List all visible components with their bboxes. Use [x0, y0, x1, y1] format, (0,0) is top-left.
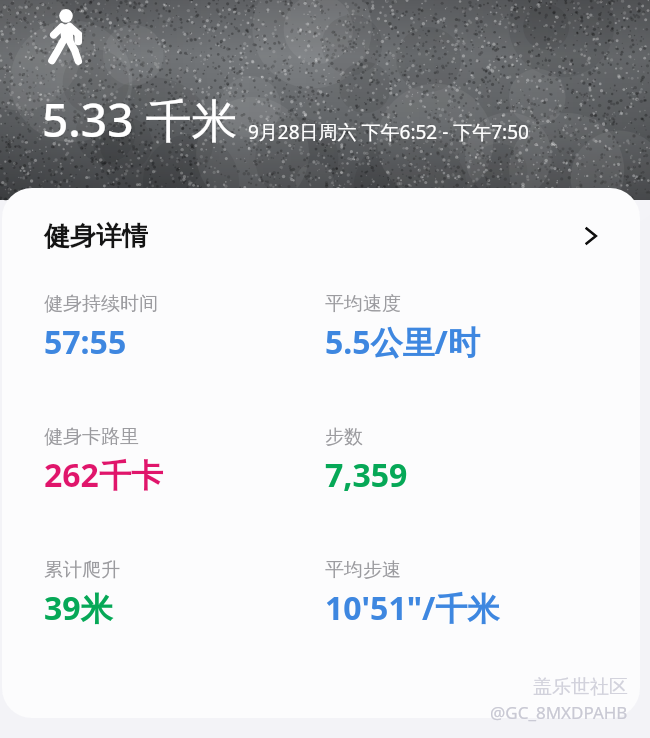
- staticText: 5.5公里/时: [325, 320, 480, 364]
- staticText: 平均步速: [325, 558, 401, 582]
- staticText: 健身详情: [44, 220, 148, 253]
- staticText: 10'51"/千米: [325, 586, 500, 630]
- staticText: 健身持续时间: [44, 292, 158, 316]
- staticText: 5.33 千米: [42, 88, 238, 151]
- staticText: 步数: [325, 425, 363, 449]
- button[interactable]: 步数: [325, 417, 620, 497]
- other: Walking: [44, 8, 88, 64]
- staticText: @GC_8MXDPAHB: [490, 701, 628, 724]
- staticText: 262千卡: [44, 453, 163, 497]
- button[interactable]: 健身持续时间: [44, 284, 325, 364]
- button[interactable]: 累计爬升: [44, 550, 325, 630]
- staticText: 盖乐世社区: [533, 675, 628, 699]
- button[interactable]: 平均步速: [325, 550, 620, 630]
- staticText: 累计爬升: [44, 558, 120, 582]
- button[interactable]: 健身详情: [2, 188, 640, 284]
- staticText: 9月28日周六 下午6:52 - 下午7:50: [248, 119, 529, 145]
- staticText: 39米: [44, 586, 113, 630]
- button[interactable]: 健身卡路里: [44, 417, 325, 497]
- staticText: 57:55: [44, 320, 127, 364]
- button[interactable]: 平均速度: [325, 284, 620, 364]
- staticText: 健身卡路里: [44, 425, 139, 449]
- staticText: 7,359: [325, 453, 408, 497]
- staticText: 平均速度: [325, 292, 401, 316]
